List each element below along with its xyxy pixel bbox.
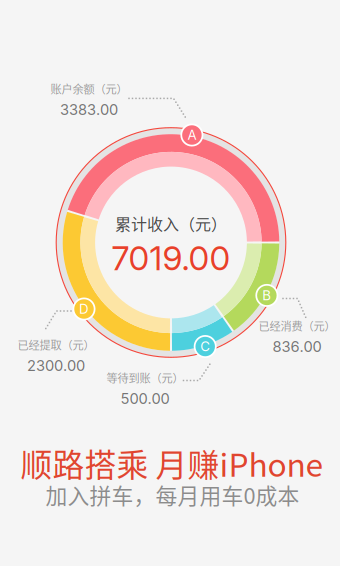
staticText: 已经消费（元） (258, 317, 335, 334)
button[interactable]: 已经提取（元） (17, 336, 94, 374)
button[interactable]: 账户余额（元） (50, 80, 127, 118)
staticText: B (262, 287, 271, 303)
staticText: 等待到账（元） (106, 369, 183, 386)
staticText: 2300.00 (27, 357, 85, 374)
staticText: 3383.00 (60, 101, 118, 118)
staticText: 500.00 (120, 390, 169, 407)
staticText: 账户余额（元） (50, 80, 127, 97)
staticText: A (187, 127, 196, 143)
button[interactable]: 等待到账（元） (106, 369, 183, 407)
staticText: 已经提取（元） (17, 336, 94, 353)
button[interactable]: 已经消费（元） (258, 317, 335, 355)
staticText: D (79, 301, 89, 317)
staticText: C (200, 338, 210, 355)
staticText: 加入拼车，每月用车0成本 (45, 479, 299, 510)
staticText: 顺路搭乘 月赚iPhone (20, 440, 323, 486)
staticText: 累计收入（元） (115, 212, 227, 235)
staticText: 7019.00 (111, 238, 230, 278)
staticText: 836.00 (272, 338, 321, 355)
